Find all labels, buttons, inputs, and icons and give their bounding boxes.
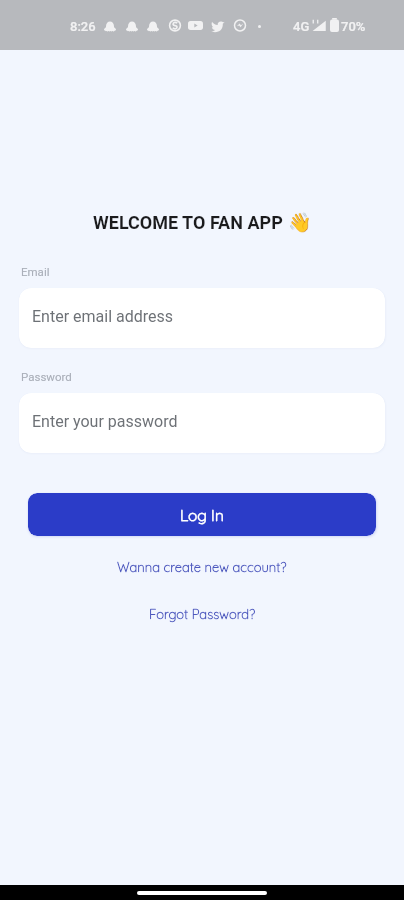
staticText: 4G: [293, 19, 310, 34]
staticText: WELCOME TO FAN APP: [93, 212, 283, 233]
staticText: Enter your password: [32, 412, 178, 431]
staticText: 8:26: [70, 19, 96, 34]
staticText: Email: [21, 265, 50, 278]
staticText: 👋: [288, 211, 312, 233]
staticText: Enter email address: [32, 307, 174, 326]
button[interactable]: Enter email address: [19, 288, 385, 348]
button[interactable]: Log In: [28, 493, 376, 536]
staticText: Password: [21, 370, 72, 383]
button[interactable]: Wanna create new account?: [105, 554, 299, 580]
staticText: Log In: [180, 505, 224, 524]
button[interactable]: Enter your password: [19, 393, 385, 453]
button[interactable]: Forgot Password?: [137, 601, 268, 627]
staticText: 70%: [341, 19, 366, 34]
